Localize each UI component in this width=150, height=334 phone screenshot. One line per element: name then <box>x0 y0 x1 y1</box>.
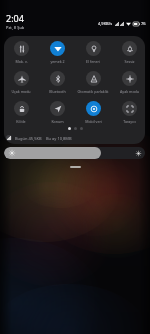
other: yemek 2 <box>50 41 65 56</box>
staticText: Tarayıcı <box>123 119 136 124</box>
button[interactable]: Brightness <box>4 147 145 159</box>
button[interactable]: El feneri <box>75 41 111 65</box>
button[interactable]: Konum <box>39 101 75 125</box>
button[interactable]: Kilitle <box>3 101 39 125</box>
button[interactable]: Uçak modu <box>3 71 39 95</box>
staticText: Ayak modu <box>120 89 139 94</box>
staticText: El feneri <box>86 59 100 64</box>
staticText: Sessiz <box>124 59 135 64</box>
other: Kilitle <box>14 101 29 116</box>
staticText: Pzt, 8 Şub <box>6 25 25 30</box>
staticText: Mobil veri <box>85 119 102 124</box>
other: El feneri <box>86 41 101 56</box>
staticText: yemek 2 <box>50 59 65 64</box>
staticText: Mob. v. <box>15 59 28 64</box>
staticText: Bluetooth <box>49 89 66 94</box>
staticText: 4,9KB/s <box>98 21 113 26</box>
button[interactable]: Mob. v. <box>3 41 39 65</box>
staticText: 2:04 <box>6 12 24 24</box>
button[interactable]: Bluetooth <box>39 71 75 95</box>
button[interactable]: Close panel <box>70 166 81 168</box>
other: Mobil veri <box>86 101 101 116</box>
other: Sessiz <box>122 41 137 56</box>
staticText: 76 <box>141 21 146 26</box>
button[interactable]: Sessiz <box>111 41 147 65</box>
staticText: Uçak modu <box>11 89 31 94</box>
button[interactable]: yemek 2 <box>39 41 75 65</box>
other: Tarayıcı <box>122 101 137 116</box>
button[interactable]: Ayak modu <box>111 71 147 95</box>
other: Bluetooth <box>50 71 65 86</box>
staticText: Bugün 45,5KB <box>15 136 42 141</box>
staticText: Konum <box>51 119 64 124</box>
staticText: Kilitle <box>16 119 26 124</box>
other: Ayak modu <box>122 71 137 86</box>
button[interactable]: Mobil veri <box>75 101 111 125</box>
button[interactable]: Otomatik parlaklık <box>75 71 111 95</box>
other: Konum <box>50 101 65 116</box>
button[interactable]: Tarayıcı <box>111 101 147 125</box>
staticText: Bu ay 10,8MB <box>46 136 72 141</box>
other: Uçak modu <box>14 71 29 86</box>
staticText: Otomatik parlaklık <box>77 89 109 94</box>
other: Otomatik parlaklık <box>86 71 101 86</box>
other: Mob. v. <box>14 41 29 56</box>
